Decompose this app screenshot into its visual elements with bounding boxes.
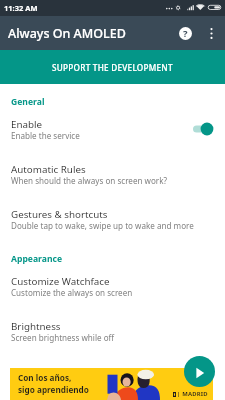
staticText: ? <box>183 27 188 40</box>
staticText: When should the always on screen work? <box>11 175 168 186</box>
staticText: Enable <box>11 118 43 131</box>
staticText: Screen brightness while off <box>11 332 115 343</box>
staticText: SUPPORT THE DEVELOPMENT <box>52 62 173 73</box>
staticText: Gestures & shortcuts <box>11 208 108 221</box>
button[interactable]: Help <box>172 20 198 46</box>
staticText: Appearance <box>11 253 63 265</box>
button[interactable]: Enable <box>0 110 225 155</box>
staticText: Customize Watchface <box>11 275 110 288</box>
staticText: Customize the always on screen <box>11 287 133 298</box>
staticText: sigo aprendiendo <box>18 384 89 395</box>
button[interactable]: Gestures & shortcuts <box>0 200 225 245</box>
staticText: Con los años, <box>18 372 72 383</box>
button[interactable]: Brightness <box>0 312 225 357</box>
button[interactable]: Con los años, <box>10 368 213 400</box>
staticText: Enable the service <box>11 130 80 141</box>
button[interactable]: SUPPORT THE DEVELOPMENT <box>0 50 225 84</box>
staticText: General <box>11 96 45 108</box>
button[interactable]: Automatic Rules <box>0 155 225 200</box>
button[interactable]: Start <box>184 356 215 387</box>
staticText: | MADRID <box>177 390 208 398</box>
staticText: 11:32 AM <box>4 3 38 13</box>
staticText: Automatic Rules <box>11 163 86 176</box>
staticText: Double tap to wake, swipe up to wake and… <box>11 220 194 231</box>
button[interactable]: Customize Watchface <box>0 267 225 312</box>
button[interactable]: Enable toggle <box>193 120 214 138</box>
button[interactable]: More options <box>198 20 224 46</box>
staticText: Always On AMOLED <box>8 25 126 42</box>
staticText: Brightness <box>11 320 61 333</box>
